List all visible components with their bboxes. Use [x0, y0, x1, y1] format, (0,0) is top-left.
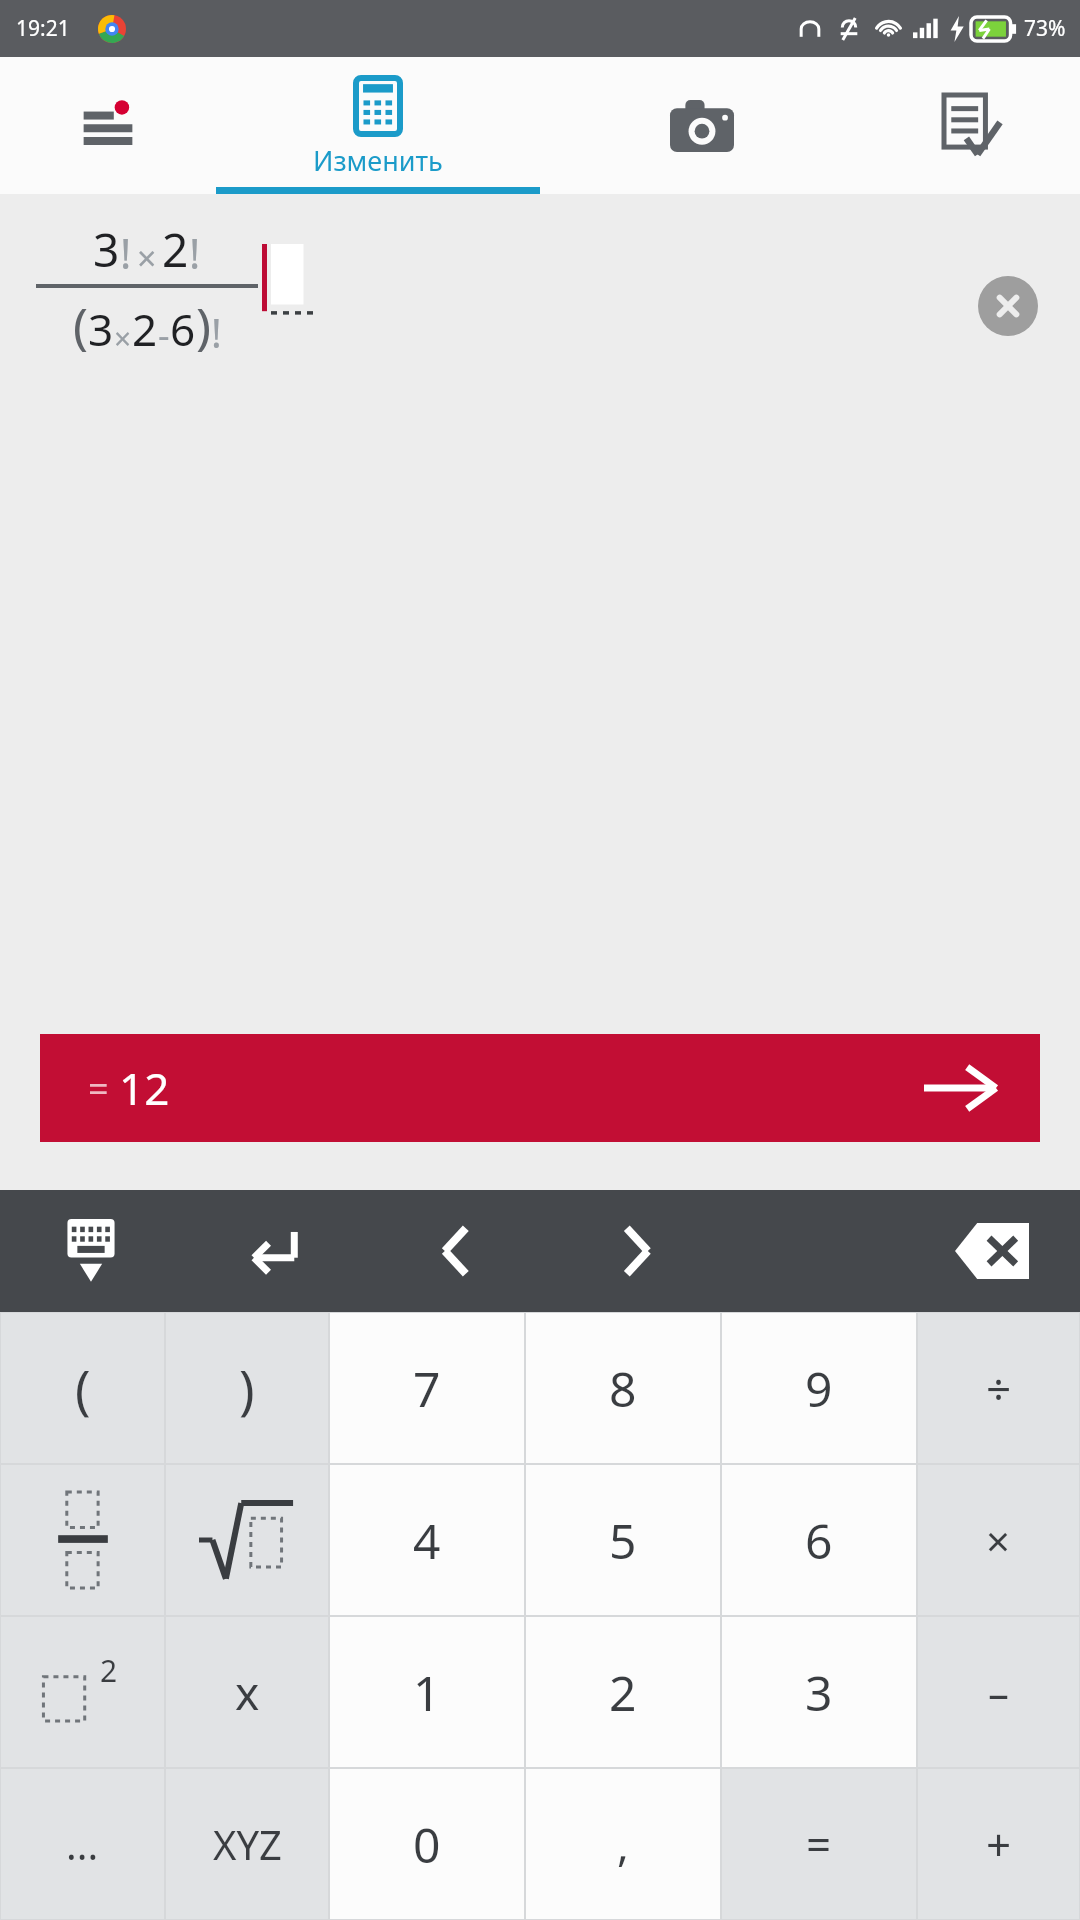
- button[interactable]: ÷: [918, 1313, 1079, 1463]
- button[interactable]: Enter: [182, 1190, 364, 1312]
- button[interactable]: (: [1, 1313, 164, 1463]
- staticText: ): [239, 1353, 255, 1424]
- staticText: 2: [609, 1660, 637, 1725]
- button[interactable]: Right: [546, 1190, 728, 1312]
- staticText: 5: [609, 1508, 637, 1573]
- button[interactable]: +: [918, 1769, 1079, 1919]
- staticText: 2: [132, 299, 158, 359]
- button[interactable]: 2: [526, 1617, 720, 1767]
- button[interactable]: Fraction: [1, 1465, 164, 1615]
- staticText: 4: [413, 1508, 441, 1573]
- button[interactable]: 1: [330, 1617, 524, 1767]
- button[interactable]: Square root: [166, 1465, 328, 1615]
- button[interactable]: ): [166, 1313, 328, 1463]
- staticText: 19:21: [16, 14, 70, 43]
- staticText: ×: [137, 235, 157, 281]
- button[interactable]: ×: [918, 1465, 1079, 1615]
- button[interactable]: Hide keyboard: [0, 1190, 182, 1312]
- button[interactable]: –: [918, 1617, 1079, 1767]
- staticText: ×: [114, 318, 132, 359]
- button[interactable]: Изменить: [216, 57, 540, 194]
- button[interactable]: Notebook: [864, 57, 1080, 194]
- button[interactable]: =: [722, 1769, 916, 1919]
- staticText: 3: [88, 299, 114, 359]
- button[interactable]: Backspace: [904, 1190, 1080, 1312]
- staticText: ,: [617, 1814, 629, 1874]
- button[interactable]: Square: [1, 1617, 164, 1767]
- button[interactable]: 5: [526, 1465, 720, 1615]
- button[interactable]: Camera: [540, 57, 864, 194]
- button[interactable]: Menu: [0, 57, 216, 194]
- staticText: (: [73, 291, 88, 359]
- button[interactable]: Clear: [978, 276, 1038, 336]
- staticText: ...: [66, 1817, 99, 1871]
- button[interactable]: Left: [364, 1190, 546, 1312]
- staticText: Изменить: [313, 142, 443, 179]
- staticText: 0: [413, 1812, 441, 1877]
- staticText: +: [986, 1814, 1012, 1874]
- staticText: 2: [162, 218, 189, 281]
- staticText: ): [196, 291, 211, 359]
- staticText: ×: [986, 1512, 1011, 1569]
- button[interactable]: XYZ: [166, 1769, 328, 1919]
- staticText: !: [189, 224, 201, 281]
- button[interactable]: 4: [330, 1465, 524, 1615]
- button[interactable]: 6: [722, 1465, 916, 1615]
- button[interactable]: x: [166, 1617, 328, 1767]
- staticText: 12: [119, 1058, 170, 1118]
- staticText: x: [235, 1661, 260, 1724]
- button[interactable]: 0: [330, 1769, 524, 1919]
- button[interactable]: ,: [526, 1769, 720, 1919]
- staticText: ÷: [986, 1358, 1012, 1418]
- staticText: 7: [413, 1356, 441, 1421]
- button[interactable]: 8: [526, 1313, 720, 1463]
- staticText: 9: [805, 1356, 833, 1421]
- staticText: XYZ: [213, 1817, 282, 1871]
- staticText: =: [806, 1814, 832, 1874]
- staticText: -: [158, 310, 170, 359]
- staticText: 3: [805, 1660, 833, 1725]
- staticText: 6: [805, 1508, 833, 1573]
- staticText: 1: [413, 1660, 441, 1725]
- staticText: 3: [93, 218, 120, 281]
- staticText: –: [988, 1664, 1010, 1721]
- staticText: !: [211, 305, 222, 359]
- button[interactable]: 7: [330, 1313, 524, 1463]
- staticText: !: [120, 224, 132, 281]
- button[interactable]: 3: [722, 1617, 916, 1767]
- staticText: 73%: [1024, 14, 1066, 43]
- staticText: (: [75, 1353, 91, 1424]
- staticText: =: [88, 1064, 109, 1113]
- staticText: 8: [609, 1356, 637, 1421]
- staticText: 2: [100, 1650, 118, 1691]
- button[interactable]: =: [40, 1034, 1040, 1142]
- staticText: 6: [170, 299, 196, 359]
- button[interactable]: ...: [1, 1769, 164, 1919]
- button[interactable]: 9: [722, 1313, 916, 1463]
